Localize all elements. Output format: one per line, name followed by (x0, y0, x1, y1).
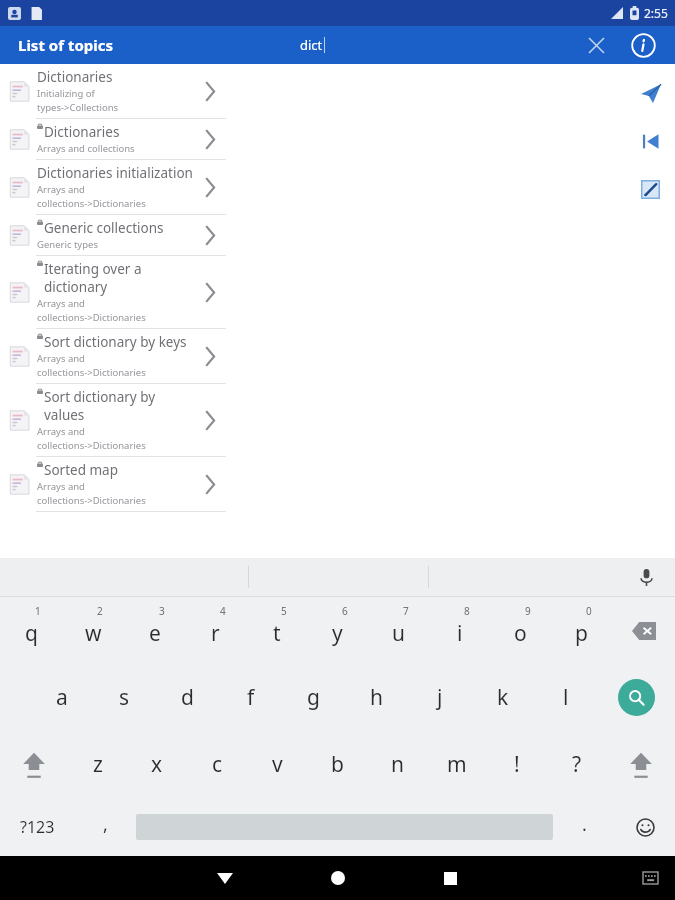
staticText: collections->Dictionaries (37, 366, 146, 379)
staticText: Dictionaries (37, 68, 113, 86)
staticText: e (149, 619, 161, 648)
staticText: s (119, 683, 130, 712)
button[interactable]: Dictionaries initialization (0, 160, 227, 215)
button[interactable]: Search (597, 664, 675, 731)
button[interactable]: Dictionaries (0, 119, 227, 160)
button[interactable]: 1 (0, 597, 62, 664)
button[interactable]: c (187, 731, 247, 798)
button[interactable]: Shift (0, 731, 68, 798)
staticText: k (497, 683, 509, 712)
staticText: 3 (159, 604, 165, 618)
staticText: 0 (586, 604, 592, 618)
staticText: m (447, 750, 467, 779)
button[interactable]: 6 (307, 597, 368, 664)
button[interactable]: 2 (62, 597, 124, 664)
button[interactable]: Emoji (615, 798, 675, 856)
button[interactable]: dict (300, 36, 530, 54)
button[interactable]: Sort dictionary by keys (0, 329, 227, 384)
button[interactable]: Dictionaries (0, 64, 227, 119)
staticText: Dictionaries initialization (37, 164, 193, 182)
button[interactable]: Send (633, 76, 667, 110)
staticText: Iterating over a dictionary (44, 260, 197, 296)
button[interactable]: . (553, 798, 615, 856)
staticText: collections->Dictionaries (37, 439, 146, 452)
staticText: q (25, 619, 38, 648)
staticText: Arrays and (37, 352, 85, 365)
button[interactable]: b (307, 731, 367, 798)
staticText: Arrays and (37, 297, 85, 310)
button[interactable]: Backspace (612, 597, 675, 664)
button[interactable]: 4 (185, 597, 246, 664)
staticText: 7 (403, 604, 409, 618)
staticText: Arrays and (37, 183, 85, 196)
button[interactable]: Iterating over a dictionary (0, 256, 227, 329)
button[interactable]: 5 (246, 597, 307, 664)
button[interactable]: h (345, 664, 408, 731)
button[interactable]: s (93, 664, 156, 731)
button[interactable]: Recent apps (432, 860, 468, 896)
button[interactable]: , (74, 798, 136, 856)
button[interactable]: Generic collections (0, 215, 227, 256)
staticText: 6 (342, 604, 348, 618)
button[interactable]: Edit (633, 172, 667, 206)
staticText: 9 (525, 604, 531, 618)
staticText: , (103, 812, 108, 837)
staticText: . (582, 812, 587, 837)
button[interactable]: 9 (490, 597, 551, 664)
button[interactable]: k (471, 664, 534, 731)
button[interactable]: Sorted map (0, 457, 227, 512)
staticText: n (391, 750, 404, 779)
button[interactable]: Home (320, 860, 356, 896)
button[interactable]: Info (625, 27, 661, 63)
button[interactable]: Hide keyboard (207, 860, 243, 896)
staticText: f (247, 683, 255, 712)
staticText: 2 (97, 604, 103, 618)
button[interactable]: v (247, 731, 307, 798)
button[interactable]: d (156, 664, 219, 731)
button[interactable]: 3 (124, 597, 185, 664)
staticText: ?123 (20, 816, 55, 838)
staticText: collections->Dictionaries (37, 311, 146, 324)
button[interactable]: 0 (551, 597, 612, 664)
staticText: z (93, 750, 103, 779)
button[interactable]: Voice input (629, 560, 663, 594)
button[interactable]: m (427, 731, 487, 798)
button[interactable]: Switch keyboard (635, 863, 665, 893)
staticText: 4 (220, 604, 226, 618)
button[interactable]: j (408, 664, 471, 731)
staticText: l (563, 683, 569, 712)
staticText: types->Collections (37, 101, 119, 114)
button[interactable]: l (534, 664, 597, 731)
staticText: i (457, 619, 463, 648)
button[interactable]: Shift (607, 731, 675, 798)
staticText: Arrays and collections (37, 142, 135, 155)
staticText: List of topics (18, 35, 114, 55)
button[interactable]: 8 (429, 597, 490, 664)
button[interactable]: a (30, 664, 93, 731)
button[interactable]: z (68, 731, 127, 798)
button[interactable]: ! (487, 731, 547, 798)
button[interactable]: g (282, 664, 345, 731)
button[interactable]: Clear search (579, 28, 613, 62)
staticText: a (56, 683, 68, 712)
button[interactable]: ?123 (0, 798, 74, 856)
button[interactable]: 7 (368, 597, 429, 664)
button[interactable]: n (367, 731, 427, 798)
staticText: y (332, 619, 343, 648)
staticText: b (331, 750, 344, 779)
staticText: Sort dictionary by values (44, 388, 197, 424)
button[interactable]: Skip to start (633, 124, 667, 158)
button[interactable]: x (127, 731, 187, 798)
staticText: c (212, 750, 223, 779)
staticText: ? (572, 750, 582, 779)
button[interactable]: Sort dictionary by values (0, 384, 227, 457)
staticText: w (85, 619, 102, 648)
button[interactable]: f (219, 664, 282, 731)
staticText: 2:55 (644, 5, 668, 21)
staticText: 1 (35, 604, 41, 618)
staticText: v (272, 750, 283, 779)
button[interactable]: ? (547, 731, 607, 798)
staticText: g (307, 683, 320, 712)
staticText: Sorted map (44, 461, 118, 479)
